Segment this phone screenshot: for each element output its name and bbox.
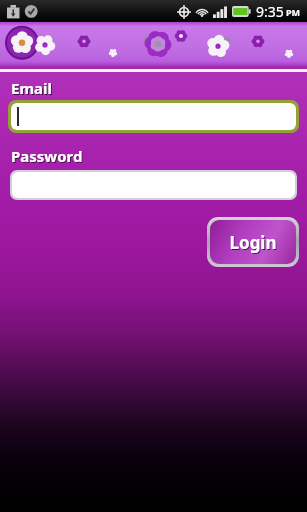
staticText: Password <box>12 147 84 167</box>
staticText: 9:35 <box>256 2 284 21</box>
button[interactable] <box>11 103 296 130</box>
staticText: PM <box>286 6 301 18</box>
staticText: Login <box>229 231 277 254</box>
staticText: Email <box>12 79 53 99</box>
button[interactable]: Login <box>210 220 296 264</box>
staticText: Email <box>11 78 52 98</box>
button[interactable] <box>12 172 295 198</box>
staticText: Password <box>11 146 83 166</box>
staticText: Login <box>230 232 278 255</box>
